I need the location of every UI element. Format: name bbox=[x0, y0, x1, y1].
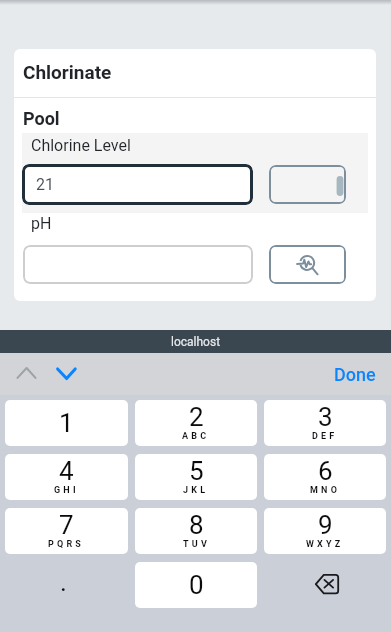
staticText: 3 bbox=[318, 402, 333, 432]
button[interactable] bbox=[23, 245, 253, 284]
button[interactable]: 9 bbox=[264, 508, 386, 554]
staticText: 6 bbox=[318, 456, 333, 486]
button[interactable]: 6 bbox=[264, 454, 386, 500]
button[interactable]: Analyse pH bbox=[269, 245, 346, 284]
button[interactable]: 4 bbox=[5, 454, 128, 500]
staticText: 21 bbox=[36, 175, 54, 194]
staticText: Chlorinate bbox=[23, 61, 112, 83]
button[interactable]: Done bbox=[334, 353, 391, 395]
button[interactable]: 0 bbox=[135, 562, 257, 608]
staticText: WXYZ bbox=[306, 539, 344, 550]
staticText: 7 bbox=[59, 510, 74, 540]
staticText: TUV bbox=[183, 539, 210, 550]
staticText: 4 bbox=[59, 456, 74, 486]
staticText: 0 bbox=[189, 570, 204, 600]
button[interactable]: Backspace bbox=[264, 562, 386, 608]
staticText: . bbox=[60, 567, 67, 597]
button[interactable]: Previous field bbox=[9, 357, 44, 391]
staticText: DEF bbox=[312, 431, 338, 442]
button[interactable]: 1 bbox=[5, 400, 128, 446]
staticText: MNO bbox=[310, 485, 341, 496]
button[interactable]: 8 bbox=[135, 508, 257, 554]
button[interactable]: Decimal point bbox=[5, 562, 128, 608]
staticText: GHI bbox=[54, 485, 79, 496]
button[interactable]: 7 bbox=[5, 508, 128, 554]
staticText: localhost bbox=[171, 335, 221, 349]
staticText: ABC bbox=[182, 431, 210, 442]
staticText: 5 bbox=[189, 456, 204, 486]
button[interactable]: 2 bbox=[135, 400, 257, 446]
button[interactable]: 5 bbox=[135, 454, 257, 500]
staticText: 2 bbox=[189, 402, 204, 432]
staticText: 8 bbox=[189, 510, 204, 540]
staticText: Chlorine Level bbox=[31, 136, 131, 155]
button[interactable]: Measure chlorine level bbox=[269, 165, 346, 204]
staticText: 1 bbox=[59, 408, 74, 438]
button[interactable]: 3 bbox=[264, 400, 386, 446]
button[interactable]: Next field bbox=[48, 357, 84, 391]
staticText: Pool bbox=[23, 108, 60, 129]
button[interactable]: 21 bbox=[22, 164, 253, 205]
staticText: PQRS bbox=[48, 539, 85, 550]
staticText: Done bbox=[334, 364, 376, 385]
staticText: pH bbox=[31, 214, 52, 233]
staticText: 9 bbox=[318, 510, 333, 540]
staticText: JKL bbox=[183, 485, 209, 496]
